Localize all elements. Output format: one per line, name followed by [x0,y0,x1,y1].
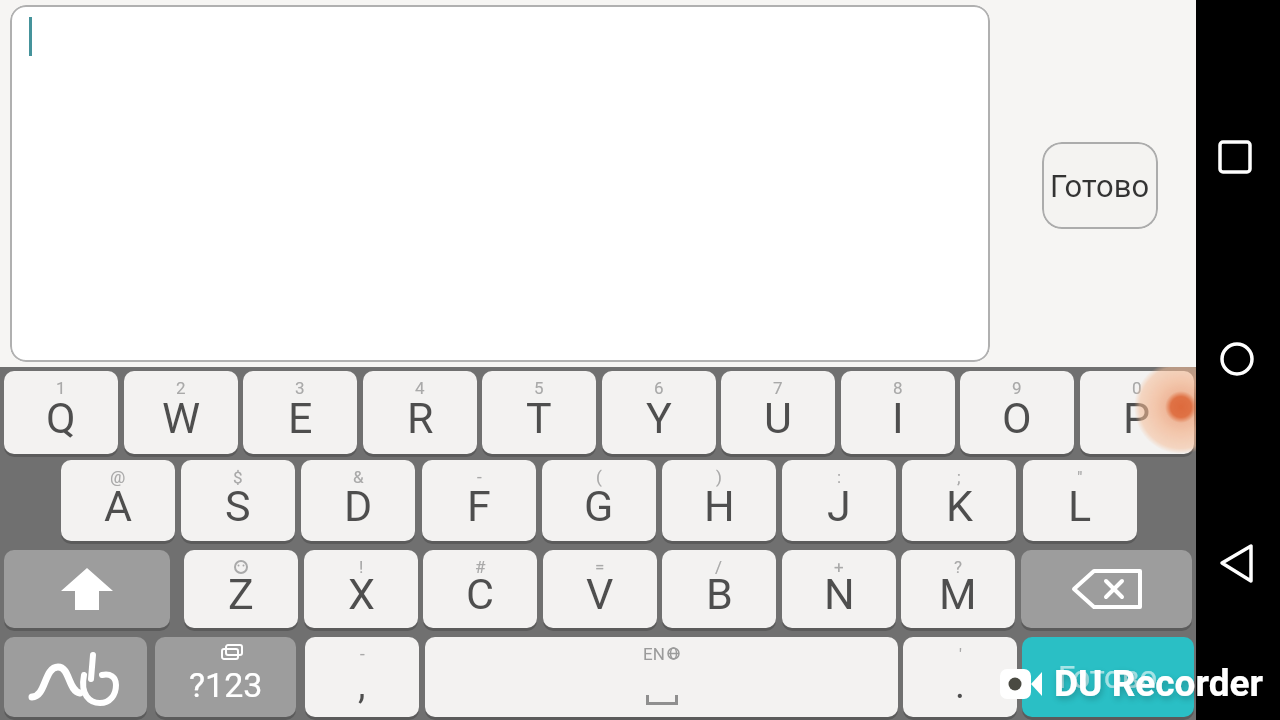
staticText: 7 [773,378,783,398]
button[interactable]: $ [181,460,295,541]
button[interactable]: ( [542,460,656,541]
button[interactable]: 9 [960,371,1074,454]
staticText: G [584,481,614,531]
staticText: @ [110,467,126,487]
staticText: , [358,663,366,708]
staticText: T [526,393,552,443]
staticText: V [586,569,614,619]
staticText: " [1077,467,1083,487]
staticText: 1 [56,378,66,398]
staticText: D [344,481,373,531]
staticText: 3 [295,378,305,398]
button[interactable]: & [301,460,415,541]
staticText: R [407,393,434,443]
staticText: C [466,569,494,619]
staticText: O [1002,393,1032,443]
staticText: ? [954,557,963,577]
staticText: S [225,481,251,531]
staticText: M [939,569,977,619]
staticText: Q [46,393,76,443]
staticText: 0 [1132,378,1142,398]
button[interactable]: EN [425,637,898,717]
staticText: L [1068,481,1092,531]
button[interactable]: 8 [841,371,955,454]
button[interactable]: # [423,550,537,628]
staticText: ) [716,467,722,487]
button[interactable]: - [422,460,536,541]
staticText: Z [228,569,254,619]
button[interactable]: " [1023,460,1137,541]
staticText: A [104,481,133,531]
button[interactable]: Z [184,550,298,628]
staticText: Y [646,393,672,443]
button[interactable]: 5 [482,371,596,454]
staticText: ?123 [189,665,263,705]
button[interactable] [10,5,990,362]
button[interactable]: @ [61,460,175,541]
staticText: I [892,393,904,443]
staticText: 4 [415,378,425,398]
staticText: U [764,393,792,443]
staticText: = [595,557,605,577]
button[interactable]: - [305,637,419,717]
staticText: E [288,393,313,443]
staticText: X [348,569,375,619]
staticText: . [955,663,966,708]
button[interactable]: 0 [1080,371,1194,454]
button[interactable]: : [782,460,896,541]
button[interactable]: ! [304,550,418,628]
staticText: & [353,467,364,487]
staticText: 5 [534,378,544,398]
staticText: - [360,644,365,664]
staticText: 9 [1012,378,1022,398]
staticText: DU Recorder [1054,662,1264,705]
staticText: # [475,557,486,577]
button[interactable] [1206,329,1268,389]
button[interactable]: 7 [721,371,835,454]
button[interactable]: 4 [363,371,477,454]
staticText: $ [233,467,243,487]
staticText: F [467,481,491,531]
staticText: ' [959,644,962,664]
staticText: B [706,569,733,619]
button[interactable]: 2 [124,371,238,454]
button[interactable]: / [662,550,776,628]
staticText: J [827,481,851,531]
staticText: H [704,481,735,531]
staticText: 6 [654,378,664,398]
button[interactable] [1206,127,1268,187]
button[interactable]: = [543,550,657,628]
staticText: : [837,467,842,487]
button[interactable]: ' [903,637,1017,717]
button[interactable]: 3 [243,371,357,454]
staticText: Готово [1058,659,1158,695]
staticText: P [1123,393,1151,443]
staticText: W [162,393,201,443]
staticText: EN [643,644,665,664]
button[interactable]: ) [662,460,776,541]
staticText: K [946,481,973,531]
button[interactable] [1206,533,1268,593]
staticText: + [834,557,844,577]
button[interactable]: ; [902,460,1016,541]
button[interactable]: 1 [4,371,118,454]
button[interactable] [1021,550,1192,628]
staticText: 2 [176,378,186,398]
button[interactable]: ? [901,550,1015,628]
button[interactable]: Готово [1042,142,1158,229]
button[interactable] [4,637,147,717]
staticText: ( [596,467,602,487]
staticText: / [715,557,723,577]
button[interactable]: + [782,550,896,628]
button[interactable]: 6 [602,371,716,454]
staticText: N [824,569,855,619]
staticText: ; [957,467,961,487]
staticText: - [477,467,482,487]
button[interactable] [4,550,170,628]
staticText: Готово [1050,168,1150,204]
staticText: ! [359,557,364,577]
staticText: 8 [893,378,903,398]
button[interactable]: ?123 [155,637,296,717]
button[interactable]: Готово [1022,637,1194,717]
